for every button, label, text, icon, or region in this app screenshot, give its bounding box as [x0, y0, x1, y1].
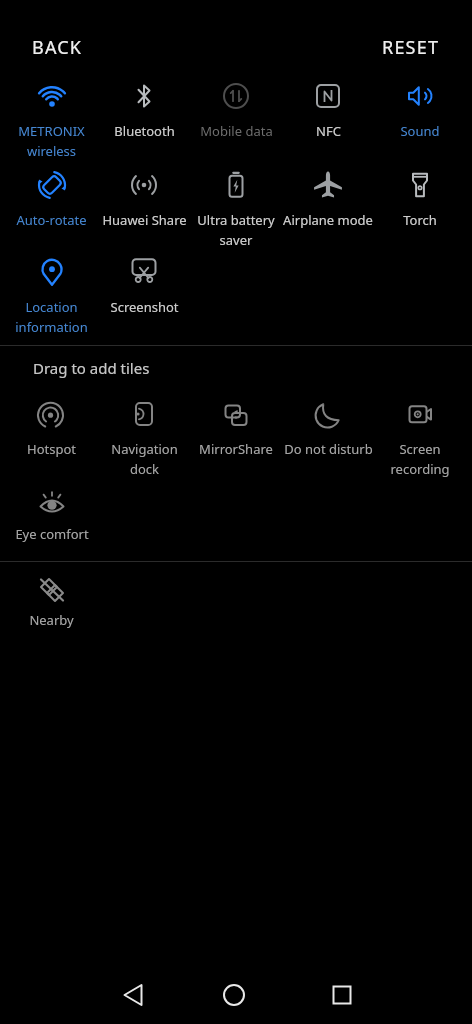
staticText: Screen recording — [390, 440, 450, 478]
staticText: Eye comfort — [15, 525, 89, 543]
button[interactable]: Airplane mode — [282, 168, 374, 229]
staticText: Hotspot — [27, 440, 76, 458]
button[interactable]: Auto-rotate — [5, 168, 98, 229]
button[interactable]: Location information — [5, 255, 98, 336]
button[interactable]: Bluetooth — [98, 79, 190, 140]
staticText: Mobile data — [200, 122, 273, 140]
staticText: Bluetooth — [114, 122, 175, 140]
button[interactable]: Screen recording — [374, 397, 466, 478]
staticText: Navigation dock — [111, 440, 178, 478]
button[interactable]: Sound — [374, 79, 466, 140]
button[interactable]: Hotspot — [5, 397, 98, 458]
staticText: RESET — [382, 35, 440, 57]
staticText: NFC — [316, 122, 341, 140]
staticText: METRONIX wireless — [18, 122, 85, 160]
staticText: Torch — [403, 211, 437, 229]
staticText: Nearby — [29, 611, 74, 629]
button[interactable] — [204, 966, 264, 1024]
button[interactable] — [312, 966, 372, 1024]
button[interactable]: Nearby — [5, 573, 98, 629]
button[interactable]: Ultra battery saver — [190, 168, 282, 249]
button[interactable]: Torch — [374, 168, 466, 229]
staticText: MirrorShare — [199, 440, 273, 458]
staticText: BACK — [32, 35, 83, 57]
button[interactable]: RESET — [382, 35, 440, 57]
button[interactable]: Mobile data — [190, 79, 282, 140]
button[interactable]: BACK — [32, 35, 83, 57]
button[interactable]: Navigation dock — [98, 397, 190, 478]
staticText: Drag to add tiles — [33, 358, 150, 378]
button[interactable] — [103, 966, 163, 1024]
button[interactable]: Do not disturb — [282, 397, 374, 458]
staticText: Screenshot — [110, 298, 179, 316]
staticText: Huawei Share — [102, 211, 187, 229]
staticText: Ultra battery saver — [197, 211, 275, 249]
button[interactable]: METRONIX wireless — [5, 79, 98, 160]
button[interactable]: MirrorShare — [190, 397, 282, 458]
staticText: Sound — [400, 122, 440, 140]
staticText: Location information — [15, 298, 88, 336]
button[interactable]: Screenshot — [98, 255, 190, 316]
button[interactable]: NFC — [282, 79, 374, 140]
staticText: Auto-rotate — [16, 211, 87, 229]
button[interactable]: Eye comfort — [5, 487, 98, 543]
button[interactable]: Huawei Share — [98, 168, 190, 229]
staticText: Do not disturb — [284, 440, 373, 458]
staticText: Airplane mode — [283, 211, 373, 229]
